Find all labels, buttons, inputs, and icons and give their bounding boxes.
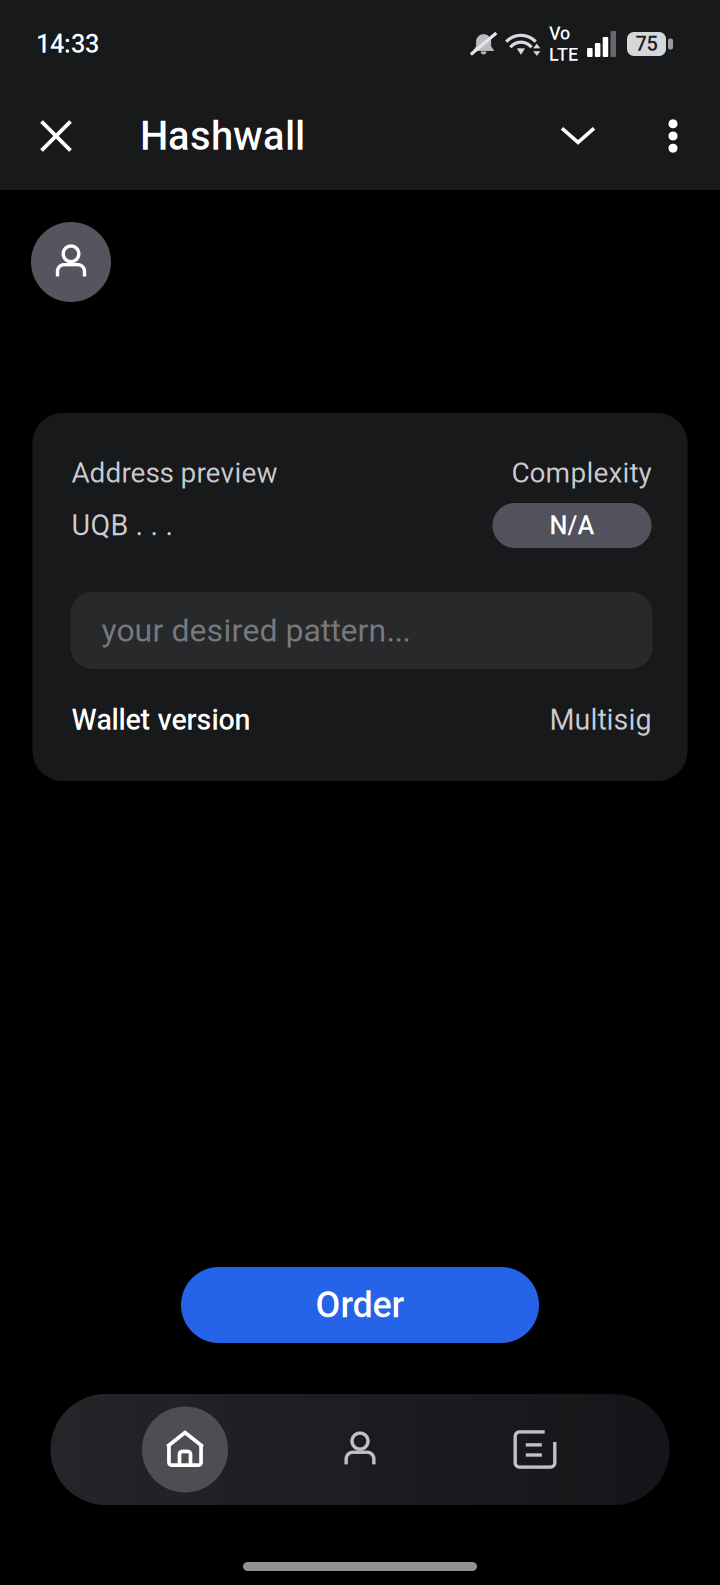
button[interactable]: Account xyxy=(31,222,111,302)
button[interactable]: Order xyxy=(181,1267,539,1343)
staticText: UQB . . . xyxy=(71,509,173,542)
staticText: Order xyxy=(315,1284,404,1326)
button[interactable]: Profile xyxy=(319,1394,401,1505)
staticText: Complexity xyxy=(511,457,651,489)
staticText: Hashwall xyxy=(140,113,305,159)
staticText: Address preview xyxy=(71,457,277,489)
button[interactable]: Close xyxy=(18,98,94,174)
staticText: your desired pattern... xyxy=(101,612,410,649)
button[interactable]: Expand xyxy=(540,98,616,174)
button[interactable]: Home xyxy=(51,1394,319,1505)
button[interactable]: More options xyxy=(647,98,699,174)
staticText: N/A xyxy=(549,511,594,540)
staticText: Vo xyxy=(549,23,570,44)
staticText: LTE xyxy=(549,44,578,65)
staticText: 75 xyxy=(635,32,657,56)
staticText: 14:33 xyxy=(36,29,99,59)
staticText: Multisig xyxy=(549,703,651,737)
button[interactable]: News xyxy=(401,1394,669,1505)
staticText: Wallet version xyxy=(71,703,250,737)
button[interactable]: your desired pattern... xyxy=(70,592,652,669)
